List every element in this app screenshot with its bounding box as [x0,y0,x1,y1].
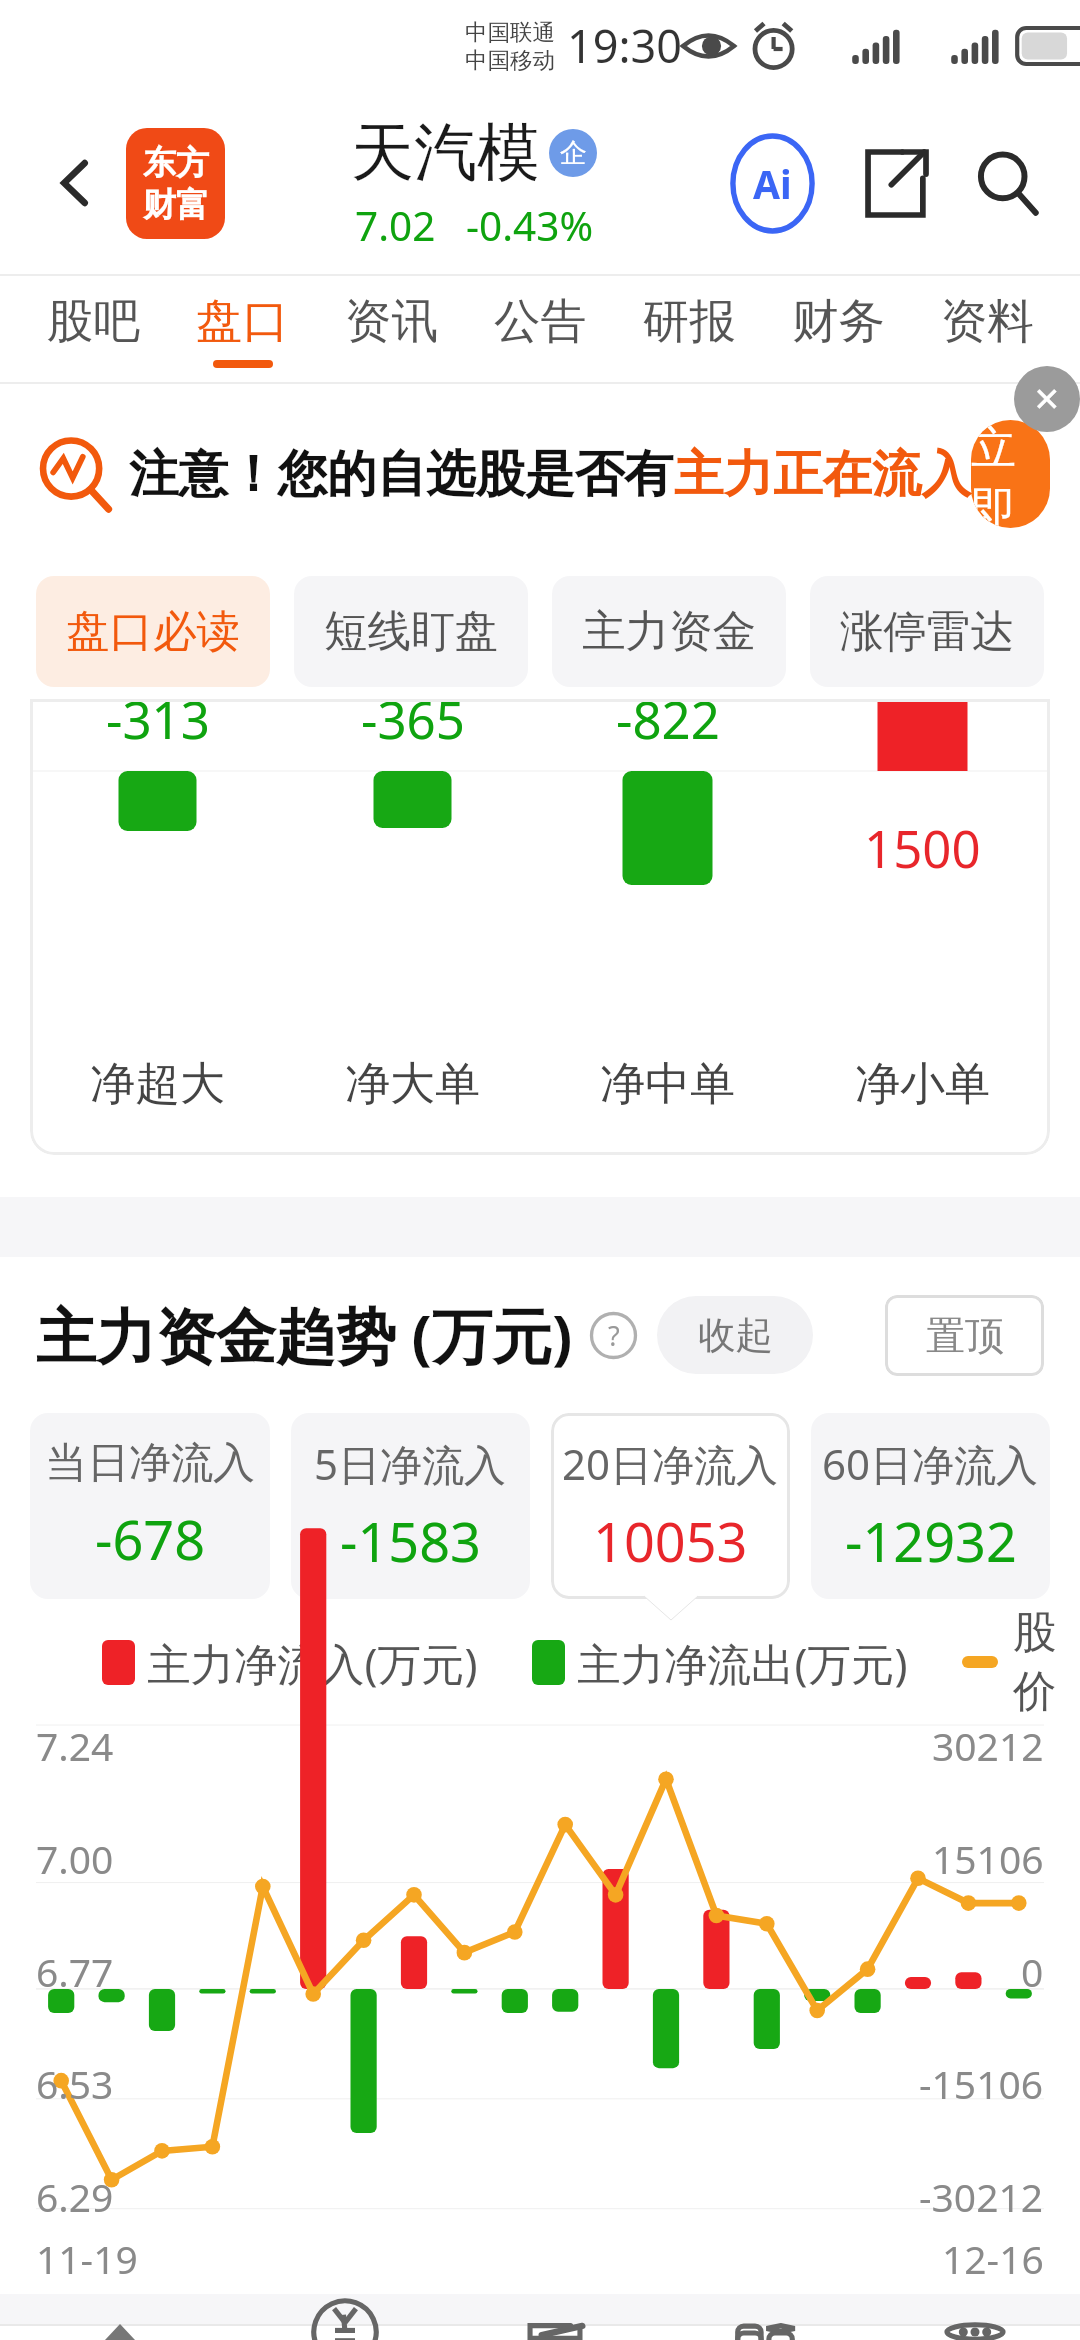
button[interactable]: 盘口 [168,276,317,384]
button[interactable]: 主力资金 [552,576,786,687]
button[interactable]: 5日净流入 [291,1413,530,1599]
staticText: 7.02 [355,198,436,253]
staticText: 5日净流入 [314,1435,507,1492]
staticText: 股价(元) [1013,1605,1080,1719]
button[interactable]: 涨停雷达 [810,576,1044,687]
staticText: 10053 [593,1504,748,1578]
staticText: 中国移动 [465,46,555,74]
staticText: 立即查看 [971,420,1050,528]
staticText: -822 [616,699,720,753]
staticText: 主力净流入(万元) [147,1633,478,1692]
staticText: 当日净流入 [45,1437,255,1490]
staticText: 股吧 [47,292,140,351]
staticText: 资讯 [345,292,438,351]
staticText: 净超大 [90,1056,225,1113]
staticText: -12932 [845,1504,1017,1578]
button[interactable]: 设自选 [870,2324,1080,2340]
staticText: 短线盯盘 [324,604,498,659]
staticText: 7.00 [36,1832,114,1885]
staticText: 12-16 [942,2232,1044,2285]
staticText: 净大单 [345,1056,480,1113]
button[interactable]: Back [30,138,120,228]
staticText: -30212 [919,2170,1044,2223]
button[interactable]: 置顶 [885,1295,1044,1376]
staticText: 30212 [932,1719,1044,1772]
button[interactable]: 60日净流入 [811,1413,1050,1599]
button[interactable]: 公告 [466,276,615,384]
staticText: 净中单 [600,1056,735,1113]
staticText: 涨停雷达 [840,604,1014,659]
button[interactable]: 财务 [764,276,913,384]
staticText: 东方 [143,142,209,184]
staticText: 15106 [932,1832,1044,1885]
button[interactable]: 功能 [660,2324,870,2340]
button[interactable]: 股吧 [18,276,168,384]
staticText: ✕ [1033,380,1061,418]
button[interactable]: 当日净流入 [30,1413,270,1599]
staticText: 主力净流出(万元) [577,1633,908,1692]
button[interactable]: Search [966,141,1050,225]
staticText: 净小单 [855,1056,990,1113]
staticText: 11-19 [36,2232,138,2285]
staticText: 主力资金 [582,604,756,659]
staticText: -15106 [919,2057,1044,2110]
button[interactable]: -313 [30,699,1050,1155]
staticText: -1583 [340,1504,481,1578]
button[interactable]: 48674.85 [0,2324,240,2340]
staticText: 主力正在流入 [674,443,971,505]
staticText: 收起 [698,1312,773,1359]
staticText: 7.24 [36,1719,114,1772]
button[interactable]: 收起 [657,1296,813,1374]
staticText: 20日净流入 [562,1435,779,1492]
button[interactable]: Close [1014,366,1080,432]
staticText: ? [608,1317,620,1354]
staticText: 研报 [643,292,736,351]
staticText: 公告 [494,292,587,351]
staticText: 中国联通 [465,18,555,46]
staticText: 0 [1021,1945,1044,1998]
button[interactable]: 交易 [240,2324,450,2340]
staticText: 6.53 [36,2057,114,2110]
button[interactable]: 资讯 [317,276,466,384]
staticText: 60日净流入 [822,1435,1039,1492]
staticText: 财富 [143,184,209,226]
staticText: 6.29 [36,2170,114,2223]
button[interactable]: 立即查看 [971,420,1050,528]
staticText: 主力资金趋势 (万元) [36,1294,573,1376]
button[interactable]: 资料 [913,276,1062,384]
staticText: -678 [95,1502,206,1576]
staticText: Ai [753,157,792,210]
staticText: 天汽模 [351,113,540,192]
staticText: -313 [106,699,210,753]
button[interactable]: 发帖 [450,2324,660,2340]
staticText: -0.43% [466,198,594,253]
staticText: 注意！您的自选股是否有 [129,443,674,505]
button[interactable]: Help [591,1313,636,1358]
staticText: 19:30 [567,15,683,76]
staticText: 财务 [792,292,885,351]
button[interactable]: 短线盯盘 [294,576,528,687]
staticText: 企 [560,136,587,170]
button[interactable]: 盘口必读 [36,576,270,687]
staticText: 6.77 [36,1945,114,1998]
staticText: 置顶 [926,1311,1004,1360]
staticText: 1500 [864,813,981,882]
button[interactable]: Share [852,141,936,225]
staticText: 盘口必读 [66,604,240,659]
button[interactable]: AI 助手 [723,134,822,233]
staticText: -365 [361,699,465,753]
staticText: 盘口 [196,292,289,351]
button[interactable]: 东方财富 [126,128,225,239]
staticText: 资料 [941,292,1034,351]
button[interactable]: 研报 [615,276,764,384]
button[interactable]: 20日净流入 [551,1413,790,1599]
